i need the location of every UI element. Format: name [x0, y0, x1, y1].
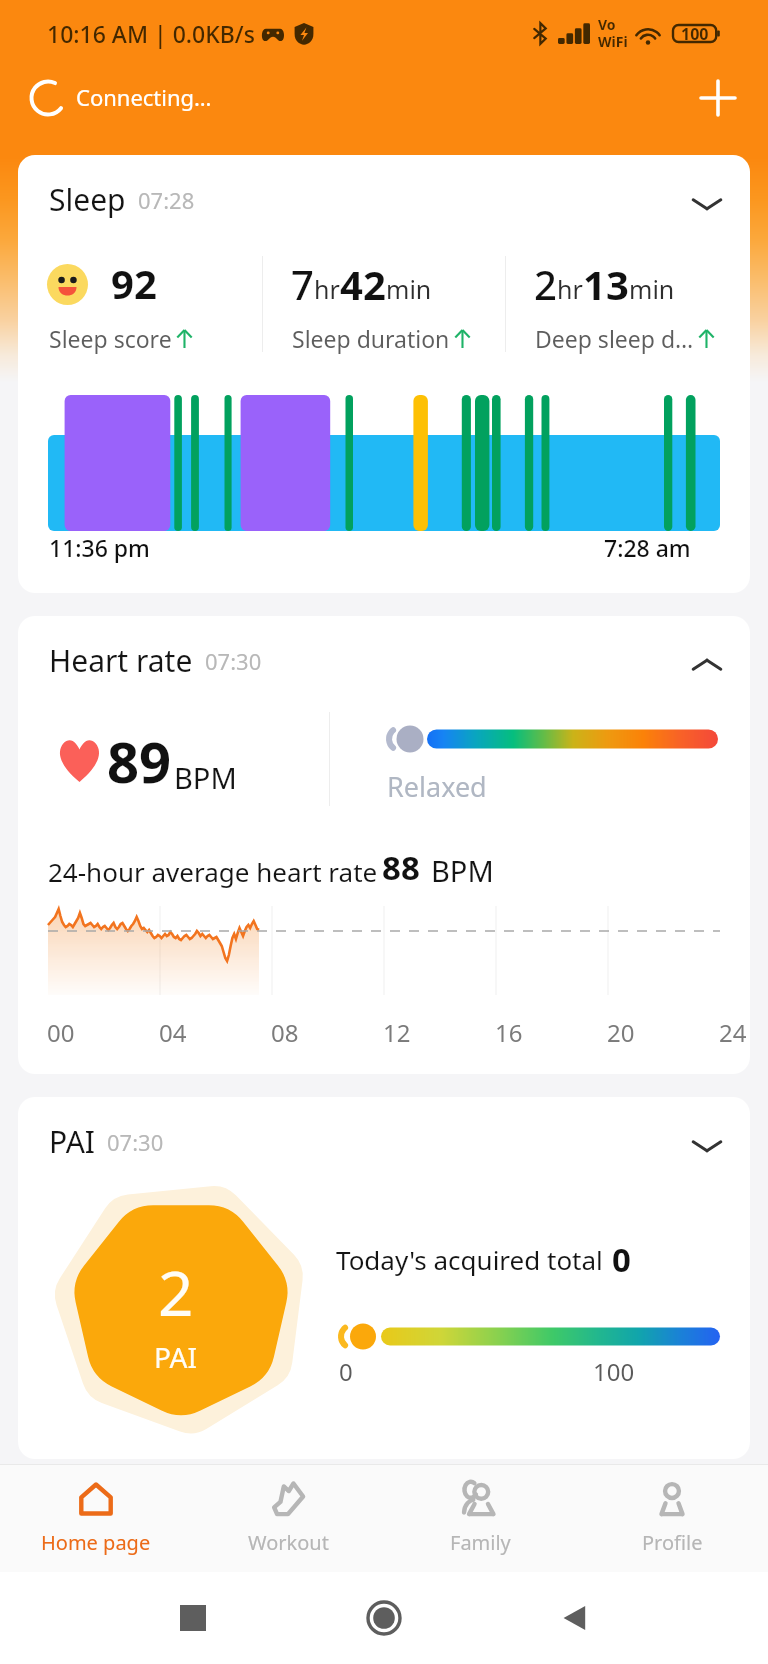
- button[interactable]: Add device: [688, 68, 748, 128]
- staticText: Sleep: [49, 179, 126, 220]
- button[interactable]: Sleep: [18, 155, 750, 593]
- staticText: Heart rate: [49, 640, 193, 681]
- staticText: 88: [382, 845, 420, 890]
- button[interactable]: Home page: [0, 1464, 192, 1572]
- staticText: BPM: [174, 758, 237, 797]
- staticText: 7: [291, 257, 314, 311]
- staticText: 89: [107, 723, 172, 799]
- staticText: Workout: [248, 1529, 329, 1556]
- staticText: 92: [111, 256, 157, 310]
- staticText: Family: [450, 1529, 511, 1556]
- staticText: 42: [340, 257, 386, 311]
- staticText: 00: [47, 1016, 75, 1049]
- staticText: BPM: [431, 851, 494, 890]
- staticText: 7:28 am: [604, 532, 691, 563]
- staticText: 16: [495, 1016, 523, 1049]
- button[interactable]: Profile: [576, 1464, 768, 1572]
- staticText: 13: [583, 257, 629, 311]
- staticText: Today's acquired total: [336, 1242, 603, 1277]
- staticText: 100: [593, 1355, 635, 1388]
- staticText: 07:28: [138, 185, 195, 215]
- staticText: 2: [158, 1250, 194, 1334]
- staticText: WiFi: [598, 32, 628, 51]
- staticText: Relaxed: [387, 768, 487, 805]
- staticText: 0: [339, 1355, 353, 1388]
- button[interactable]: Collapse: [676, 634, 738, 696]
- button[interactable]: PAI: [18, 1097, 750, 1459]
- staticText: Vo: [598, 15, 616, 34]
- staticText: 24: [719, 1016, 747, 1049]
- staticText: min: [629, 272, 675, 306]
- staticText: 11:36 pm: [49, 532, 150, 563]
- button[interactable]: Family: [384, 1464, 576, 1572]
- staticText: PAI: [154, 1338, 197, 1376]
- staticText: Sleep duration: [292, 323, 450, 354]
- staticText: 2: [534, 257, 557, 311]
- staticText: 10:16 AM | 0.0KB/s: [47, 18, 255, 49]
- button[interactable]: Workout: [192, 1464, 384, 1572]
- button[interactable]: Back: [547, 1590, 603, 1646]
- button[interactable]: Home: [356, 1590, 412, 1646]
- staticText: 08: [271, 1016, 299, 1049]
- staticText: 04: [159, 1016, 187, 1049]
- staticText: Home page: [41, 1529, 151, 1556]
- button[interactable]: Expand: [676, 1115, 738, 1177]
- staticText: PAI: [49, 1121, 95, 1162]
- button[interactable]: Expand: [676, 173, 738, 235]
- staticText: Connecting…: [76, 82, 212, 112]
- button[interactable]: Recents: [165, 1590, 221, 1646]
- staticText: Sleep score: [49, 323, 172, 354]
- staticText: Deep sleep d…: [535, 323, 694, 354]
- staticText: Profile: [642, 1529, 703, 1556]
- staticText: 12: [383, 1016, 411, 1049]
- staticText: 07:30: [205, 646, 262, 676]
- staticText: 0: [612, 1237, 631, 1282]
- staticText: hr: [314, 272, 340, 306]
- staticText: 24-hour average heart rate: [48, 854, 378, 889]
- staticText: 100: [681, 23, 709, 45]
- staticText: 07:30: [107, 1127, 164, 1157]
- staticText: min: [386, 272, 432, 306]
- staticText: hr: [557, 272, 583, 306]
- staticText: 20: [607, 1016, 635, 1049]
- button[interactable]: Heart rate: [18, 616, 750, 1074]
